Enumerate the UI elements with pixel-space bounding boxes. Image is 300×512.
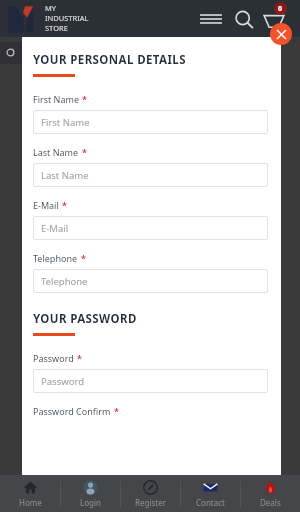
staticText: Telephone (33, 252, 78, 264)
button[interactable]: Close (270, 23, 292, 45)
staticText: Password Confirm (33, 405, 111, 417)
staticText: STORE (45, 23, 68, 33)
button[interactable]: Search (233, 10, 255, 30)
staticText: Telephone (41, 275, 88, 288)
staticText: * (114, 405, 119, 417)
button[interactable]: Register (121, 475, 180, 512)
staticText: Password (33, 352, 74, 364)
button[interactable]: Deals (241, 475, 300, 512)
button[interactable]: Contact (181, 475, 240, 512)
staticText: Login (80, 497, 101, 508)
button[interactable]: Cart (263, 10, 285, 30)
staticText: Deals (260, 497, 281, 508)
button[interactable]: Login (61, 475, 120, 512)
button[interactable]: First Name (33, 110, 268, 134)
staticText: First Name (33, 93, 79, 105)
staticText: First Name (41, 116, 90, 129)
button[interactable]: Menu (198, 10, 224, 28)
staticText: 0 (278, 4, 283, 14)
staticText: Contact (196, 497, 225, 508)
staticText: Last Name (33, 146, 79, 158)
button[interactable]: Home (0, 475, 60, 512)
button[interactable]: Password (33, 369, 268, 393)
staticText: YOUR PERSONAL DETAILS (33, 52, 186, 68)
staticText: * (81, 252, 86, 264)
staticText: Password (41, 375, 84, 388)
staticText: E-Mail (41, 222, 69, 235)
staticText: * (82, 93, 87, 105)
staticText: * (77, 352, 82, 364)
staticText: * (82, 146, 87, 158)
staticText: Home (19, 497, 42, 508)
staticText: E-Mail (33, 199, 59, 211)
staticText: INDUSTRIAL (45, 13, 89, 23)
button[interactable]: E-Mail (33, 216, 268, 240)
staticText: Last Name (41, 169, 89, 182)
staticText: MY (45, 3, 57, 13)
staticText: YOUR PASSWORD (33, 311, 137, 327)
button[interactable]: Telephone (33, 269, 268, 293)
staticText: Register (135, 497, 167, 508)
button[interactable]: Last Name (33, 163, 268, 187)
staticText: * (62, 199, 67, 211)
